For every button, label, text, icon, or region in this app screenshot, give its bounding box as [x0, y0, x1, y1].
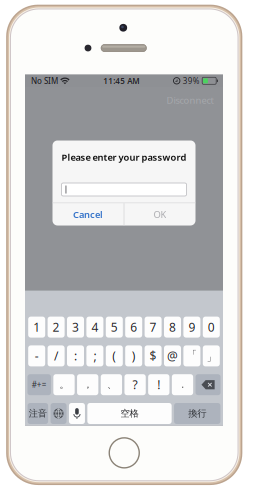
button[interactable]: Cancel	[52, 203, 124, 225]
button[interactable]: :	[67, 345, 84, 366]
button[interactable]: 。	[53, 374, 75, 395]
staticText: )	[132, 348, 136, 364]
staticText: 0	[208, 319, 215, 335]
button[interactable]: $	[145, 345, 162, 366]
button[interactable]: 9	[183, 317, 200, 338]
staticText: ;	[93, 348, 96, 364]
button[interactable]: @	[164, 345, 181, 366]
staticText: 5	[111, 319, 118, 335]
staticText: (	[112, 348, 116, 364]
staticText: No SIM	[31, 75, 58, 86]
staticText: 2	[53, 319, 60, 335]
button[interactable]: 6	[125, 317, 142, 338]
staticText: ．	[178, 379, 187, 390]
button[interactable]: 7	[145, 317, 162, 338]
button[interactable]: 3	[67, 317, 84, 338]
staticText: 11:45 AM	[103, 75, 139, 86]
button[interactable]: Next keyboard	[50, 403, 66, 424]
staticText: -	[35, 348, 39, 364]
button[interactable]: 0	[203, 317, 220, 338]
button[interactable]: 1	[28, 317, 45, 338]
staticText: ?	[133, 377, 138, 393]
staticText: Please enter your password	[61, 151, 186, 163]
button[interactable]: 注音	[27, 403, 48, 424]
button[interactable]: (	[106, 345, 123, 366]
staticText: ，	[83, 379, 92, 390]
button[interactable]: ，	[77, 374, 98, 395]
staticText: 6	[130, 319, 137, 335]
staticText: $	[150, 348, 157, 364]
staticText: @	[167, 348, 178, 364]
button[interactable]: 4	[86, 317, 103, 338]
button[interactable]: Dictation	[69, 403, 85, 424]
button[interactable]: 」	[203, 345, 220, 366]
staticText: /	[54, 348, 58, 364]
button[interactable]: !	[148, 374, 169, 395]
button[interactable]: Delete	[195, 374, 220, 395]
staticText: OK	[153, 208, 166, 221]
button[interactable]: /	[48, 345, 65, 366]
button[interactable]: 、	[101, 374, 122, 395]
button[interactable]: ;	[86, 345, 103, 366]
staticText: 。	[59, 379, 68, 390]
staticText: 空格	[120, 408, 138, 419]
staticText: 」	[207, 352, 216, 363]
button[interactable]: ?	[124, 374, 146, 395]
button[interactable]: OK	[124, 203, 195, 225]
button[interactable]: 換行	[174, 403, 220, 424]
button[interactable]: 空格	[87, 403, 172, 424]
staticText: 1	[33, 319, 40, 335]
button[interactable]: ．	[172, 374, 193, 395]
staticText: 7	[150, 319, 157, 335]
button[interactable]: 「	[183, 345, 200, 366]
staticText: !	[157, 377, 160, 393]
staticText: 3	[72, 319, 79, 335]
button[interactable]: 8	[164, 317, 181, 338]
button[interactable]: 2	[48, 317, 65, 338]
staticText: Disconnect	[166, 94, 213, 106]
button[interactable]: -	[28, 345, 45, 366]
staticText: 4	[91, 319, 98, 335]
staticText: 「	[187, 349, 196, 360]
button[interactable]: #+=	[27, 374, 51, 395]
button[interactable]: )	[125, 345, 142, 366]
staticText: :	[74, 348, 77, 364]
button[interactable]: 5	[106, 317, 123, 338]
staticText: #+=	[32, 379, 47, 390]
staticText: 39%	[183, 75, 200, 86]
staticText: 8	[169, 319, 176, 335]
button[interactable]: Disconnect	[161, 87, 223, 109]
staticText: 、	[107, 379, 116, 390]
staticText: Cancel	[73, 208, 103, 221]
staticText: 注音	[29, 408, 47, 419]
staticText: 9	[188, 319, 195, 335]
staticText: 換行	[188, 408, 206, 419]
